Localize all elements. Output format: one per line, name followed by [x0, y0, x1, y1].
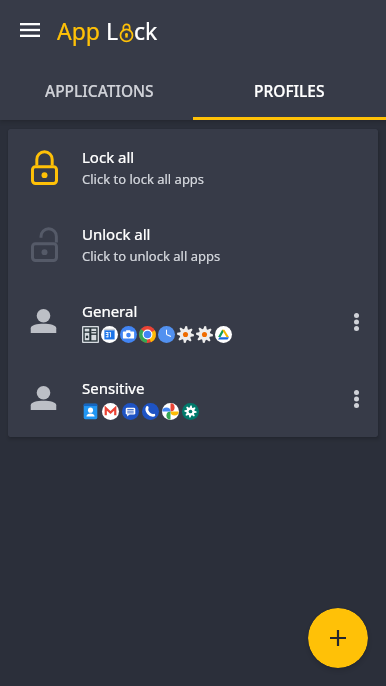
- staticText: Lock all: [82, 147, 135, 167]
- button[interactable]: More options: [334, 300, 378, 344]
- staticText: Sensitive: [82, 378, 145, 398]
- staticText: Click to lock all apps: [82, 170, 205, 188]
- staticText: General: [82, 301, 138, 321]
- button[interactable]: Lock all: [8, 129, 378, 206]
- staticText: APPLICATIONS: [45, 80, 154, 101]
- button[interactable]: More options: [334, 377, 378, 421]
- button[interactable]: Menu: [10, 10, 50, 50]
- staticText: Unlock all: [82, 224, 151, 244]
- button[interactable]: Add profile: [308, 608, 368, 668]
- staticText: App: [57, 15, 106, 46]
- staticText: L: [106, 15, 119, 46]
- button[interactable]: General: [8, 283, 378, 360]
- staticText: Click to unlock all apps: [82, 247, 221, 265]
- button[interactable]: PROFILES: [193, 60, 386, 120]
- staticText: ck: [134, 15, 158, 46]
- staticText: PROFILES: [254, 80, 325, 101]
- button[interactable]: Unlock all: [8, 206, 378, 283]
- button[interactable]: Sensitive: [8, 360, 378, 437]
- button[interactable]: APPLICATIONS: [0, 60, 193, 120]
